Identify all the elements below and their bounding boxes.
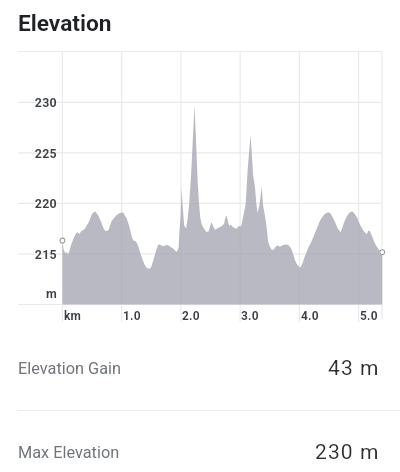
staticText: Elevation [18, 10, 112, 37]
button[interactable]: Max Elevation [0, 410, 400, 472]
staticText: 4.0 [301, 309, 319, 323]
staticText: m [0, 286, 57, 301]
staticText: km [64, 309, 82, 323]
staticText: 2.0 [182, 309, 200, 323]
staticText: 220 [0, 196, 57, 211]
staticText: 43 m [328, 356, 380, 381]
staticText: Elevation Gain [18, 359, 121, 378]
staticText: 3.0 [241, 309, 259, 323]
staticText: Max Elevation [18, 443, 120, 462]
staticText: 230 m [315, 440, 380, 465]
staticText: 1.0 [123, 309, 141, 323]
staticText: 230 [0, 95, 57, 110]
staticText: 5.0 [360, 309, 378, 323]
staticText: 215 [0, 247, 57, 262]
button[interactable]: Elevation Gain [0, 327, 400, 410]
staticText: 225 [0, 146, 57, 161]
